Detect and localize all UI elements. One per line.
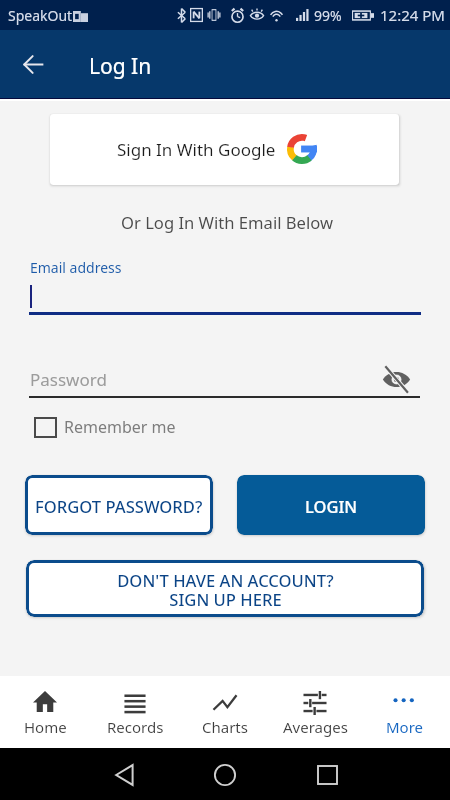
button[interactable]: More bbox=[360, 676, 450, 748]
staticText: Or Log In With Email Below bbox=[2, 211, 450, 234]
button[interactable]: Records bbox=[90, 676, 180, 748]
staticText: LOGIN bbox=[305, 495, 358, 517]
button[interactable]: Back bbox=[111, 761, 139, 789]
button[interactable]: Sign In With Google bbox=[50, 114, 399, 185]
staticText: Sign In With Google bbox=[117, 138, 276, 161]
button[interactable]: LOGIN bbox=[237, 475, 425, 535]
staticText: Email address bbox=[30, 258, 122, 277]
staticText: Home bbox=[24, 717, 67, 737]
staticText: Records bbox=[107, 717, 164, 737]
button[interactable]: Back bbox=[13, 44, 54, 85]
staticText: Averages bbox=[283, 717, 348, 737]
button[interactable]: DON'T HAVE AN ACCOUNT? SIGN UP HERE bbox=[26, 560, 424, 617]
button[interactable]: Charts bbox=[180, 676, 270, 748]
button[interactable]: Averages bbox=[270, 676, 360, 748]
staticText: More bbox=[386, 717, 424, 737]
staticText: SpeakOut bbox=[8, 6, 73, 25]
button[interactable]: Remember me bbox=[30, 412, 176, 442]
button[interactable]: FORGOT PASSWORD? bbox=[25, 475, 213, 535]
staticText: Remember me bbox=[64, 416, 176, 438]
button[interactable]: Home bbox=[0, 676, 90, 748]
button[interactable]: Home bbox=[211, 761, 239, 789]
staticText: Charts bbox=[202, 717, 248, 737]
staticText: DON'T HAVE AN ACCOUNT? SIGN UP HERE bbox=[117, 569, 334, 611]
button[interactable]: Show password bbox=[379, 362, 413, 396]
staticText: FORGOT PASSWORD? bbox=[35, 495, 203, 518]
staticText: Log In bbox=[89, 52, 152, 81]
staticText: 99% bbox=[314, 6, 342, 25]
staticText: Password bbox=[30, 368, 107, 391]
staticText: 12:24 PM bbox=[380, 5, 445, 25]
button[interactable]: Recent apps bbox=[314, 762, 340, 788]
